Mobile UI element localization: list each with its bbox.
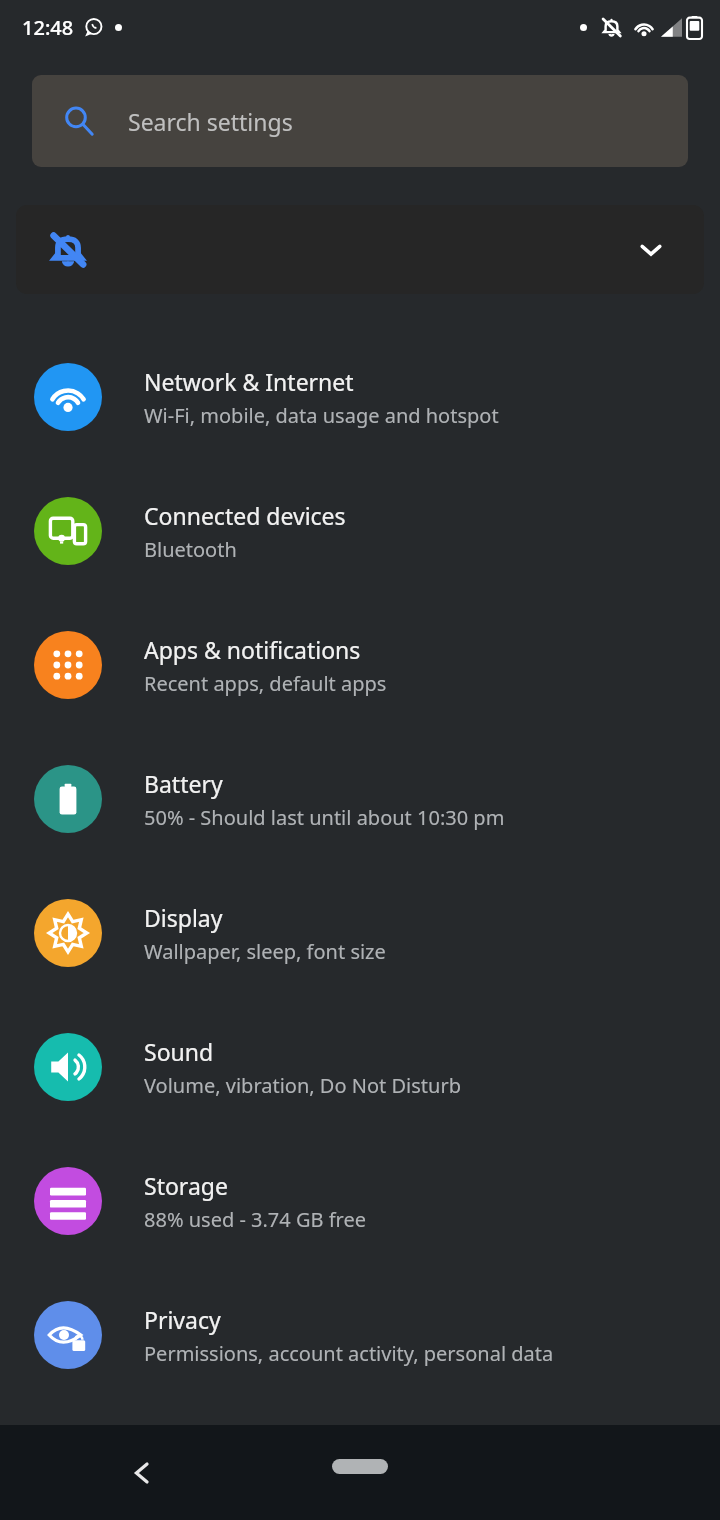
- staticText: Connected devices: [144, 500, 346, 531]
- staticText: Privacy: [144, 1304, 221, 1335]
- staticText: Apps & notifications: [144, 634, 361, 665]
- staticText: Storage: [144, 1170, 228, 1201]
- staticText: Wi-Fi, mobile, data usage and hotspot: [144, 402, 499, 429]
- button[interactable]: Location: [0, 1402, 720, 1520]
- button[interactable]: Network & Internet: [0, 330, 720, 464]
- staticText: 50% - Should last until about 10:30 pm: [144, 804, 505, 831]
- staticText: 12:48: [22, 14, 74, 41]
- button[interactable]: Storage: [0, 1134, 720, 1268]
- staticText: Sound: [144, 1036, 214, 1067]
- staticText: Battery: [144, 768, 223, 799]
- staticText: Search settings: [128, 106, 293, 137]
- button[interactable]: Do Not Disturb is on: [16, 205, 704, 294]
- button[interactable]: Battery: [0, 732, 720, 866]
- button[interactable]: Connected devices: [0, 464, 720, 598]
- staticText: Permissions, account activity, personal …: [144, 1340, 554, 1367]
- staticText: Volume, vibration, Do Not Disturb: [144, 1072, 461, 1099]
- staticText: Wallpaper, sleep, font size: [144, 938, 386, 965]
- button[interactable]: Sound: [0, 1000, 720, 1134]
- button[interactable]: Apps & notifications: [0, 598, 720, 732]
- button[interactable]: Display: [0, 866, 720, 1000]
- button[interactable]: Privacy: [0, 1268, 720, 1402]
- staticText: 88% used - 3.74 GB free: [144, 1206, 366, 1233]
- staticText: Network & Internet: [144, 366, 354, 397]
- staticText: Recent apps, default apps: [144, 670, 387, 697]
- button[interactable]: Home: [332, 1459, 388, 1474]
- staticText: Display: [144, 902, 223, 933]
- staticText: On – 23 apps have access to location: [144, 1466, 487, 1493]
- button[interactable]: Search settings: [32, 75, 688, 167]
- staticText: Bluetooth: [144, 536, 237, 563]
- button[interactable]: Back: [128, 1459, 156, 1487]
